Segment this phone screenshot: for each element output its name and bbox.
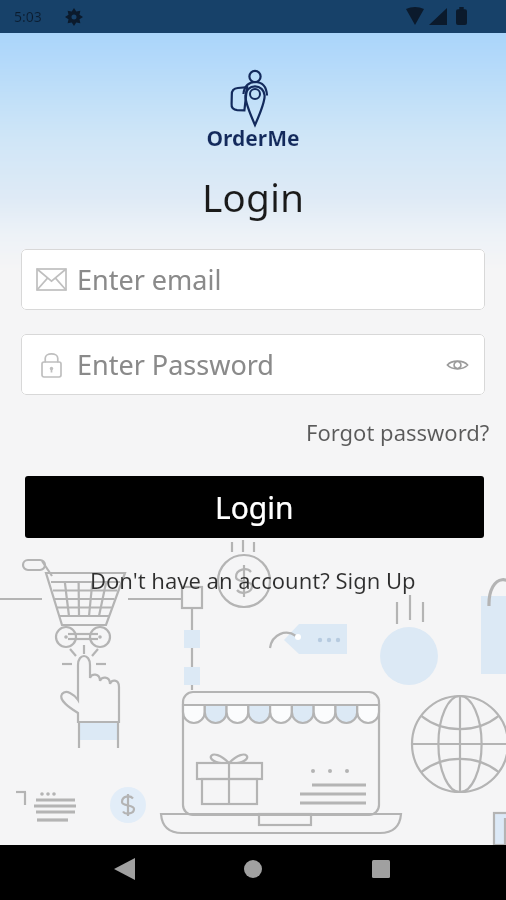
button[interactable]: Home: [231, 847, 275, 891]
button[interactable]: Back: [102, 847, 146, 891]
staticText: Login: [215, 487, 294, 528]
staticText: Login: [0, 170, 506, 223]
staticText: Don't have an account? Sign Up: [90, 565, 416, 595]
staticText: OrderMe: [0, 124, 506, 153]
button[interactable]: Don't have an account? Sign Up: [82, 561, 424, 599]
staticText: Enter email: [77, 261, 222, 298]
staticText: Enter Password: [77, 346, 274, 383]
button[interactable]: Login: [25, 476, 484, 538]
button[interactable]: Forgot password?: [290, 411, 506, 453]
button[interactable]: Recent apps: [359, 847, 403, 891]
button[interactable]: Enter Password: [21, 334, 485, 395]
staticText: Forgot password?: [306, 417, 490, 447]
staticText: 5:03: [14, 7, 42, 26]
button[interactable]: Show password: [442, 350, 472, 380]
button[interactable]: Enter email: [21, 249, 485, 310]
